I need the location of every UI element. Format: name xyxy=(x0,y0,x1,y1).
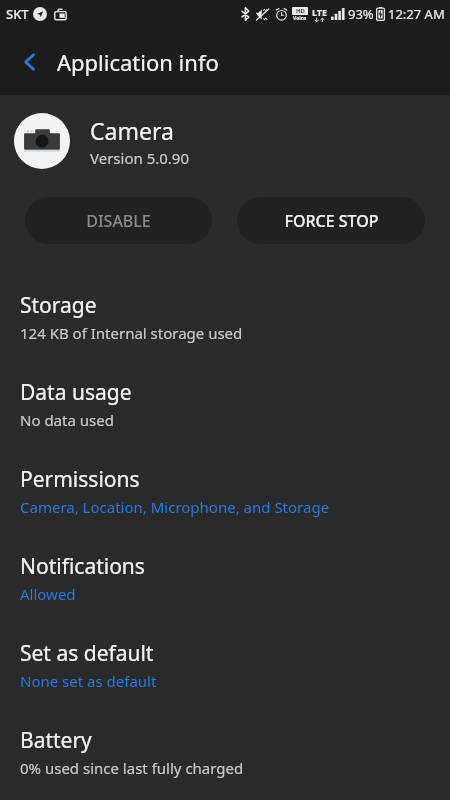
staticText: Battery xyxy=(20,726,92,755)
staticText: Data usage xyxy=(20,378,132,407)
staticText: FORCE STOP xyxy=(284,210,379,232)
staticText: Voice xyxy=(293,15,307,22)
staticText: Application info xyxy=(57,47,219,77)
button[interactable]: Navigate up xyxy=(8,40,52,84)
staticText: 124 KB of Internal storage used xyxy=(20,323,243,343)
staticText: Camera xyxy=(90,115,174,146)
button[interactable]: Set as default xyxy=(0,632,450,719)
staticText: DISABLE xyxy=(86,210,151,232)
staticText: 93% xyxy=(348,5,374,23)
staticText: SKT xyxy=(6,5,29,23)
button[interactable]: DISABLE xyxy=(25,197,212,244)
button[interactable]: Permissions xyxy=(0,458,450,545)
staticText: Allowed xyxy=(20,584,76,604)
button[interactable]: Notifications xyxy=(0,545,450,632)
button[interactable]: Storage xyxy=(0,284,450,371)
button[interactable]: FORCE STOP xyxy=(237,197,425,244)
staticText: 12:27 AM xyxy=(388,5,445,23)
staticText: 0% used since last fully charged xyxy=(20,758,244,778)
staticText: LTE xyxy=(312,6,328,18)
button[interactable]: Data usage xyxy=(0,371,450,458)
staticText: Set as default xyxy=(20,639,154,668)
staticText: None set as default xyxy=(20,671,157,691)
staticText: Permissions xyxy=(20,465,140,494)
staticText: No data used xyxy=(20,410,114,430)
staticText: Notifications xyxy=(20,552,145,581)
staticText: Storage xyxy=(20,291,97,320)
button[interactable]: Battery xyxy=(0,719,450,800)
staticText: HD xyxy=(296,7,305,15)
staticText: Version 5.0.90 xyxy=(90,148,190,168)
staticText: Camera, Location, Microphone, and Storag… xyxy=(20,497,330,517)
